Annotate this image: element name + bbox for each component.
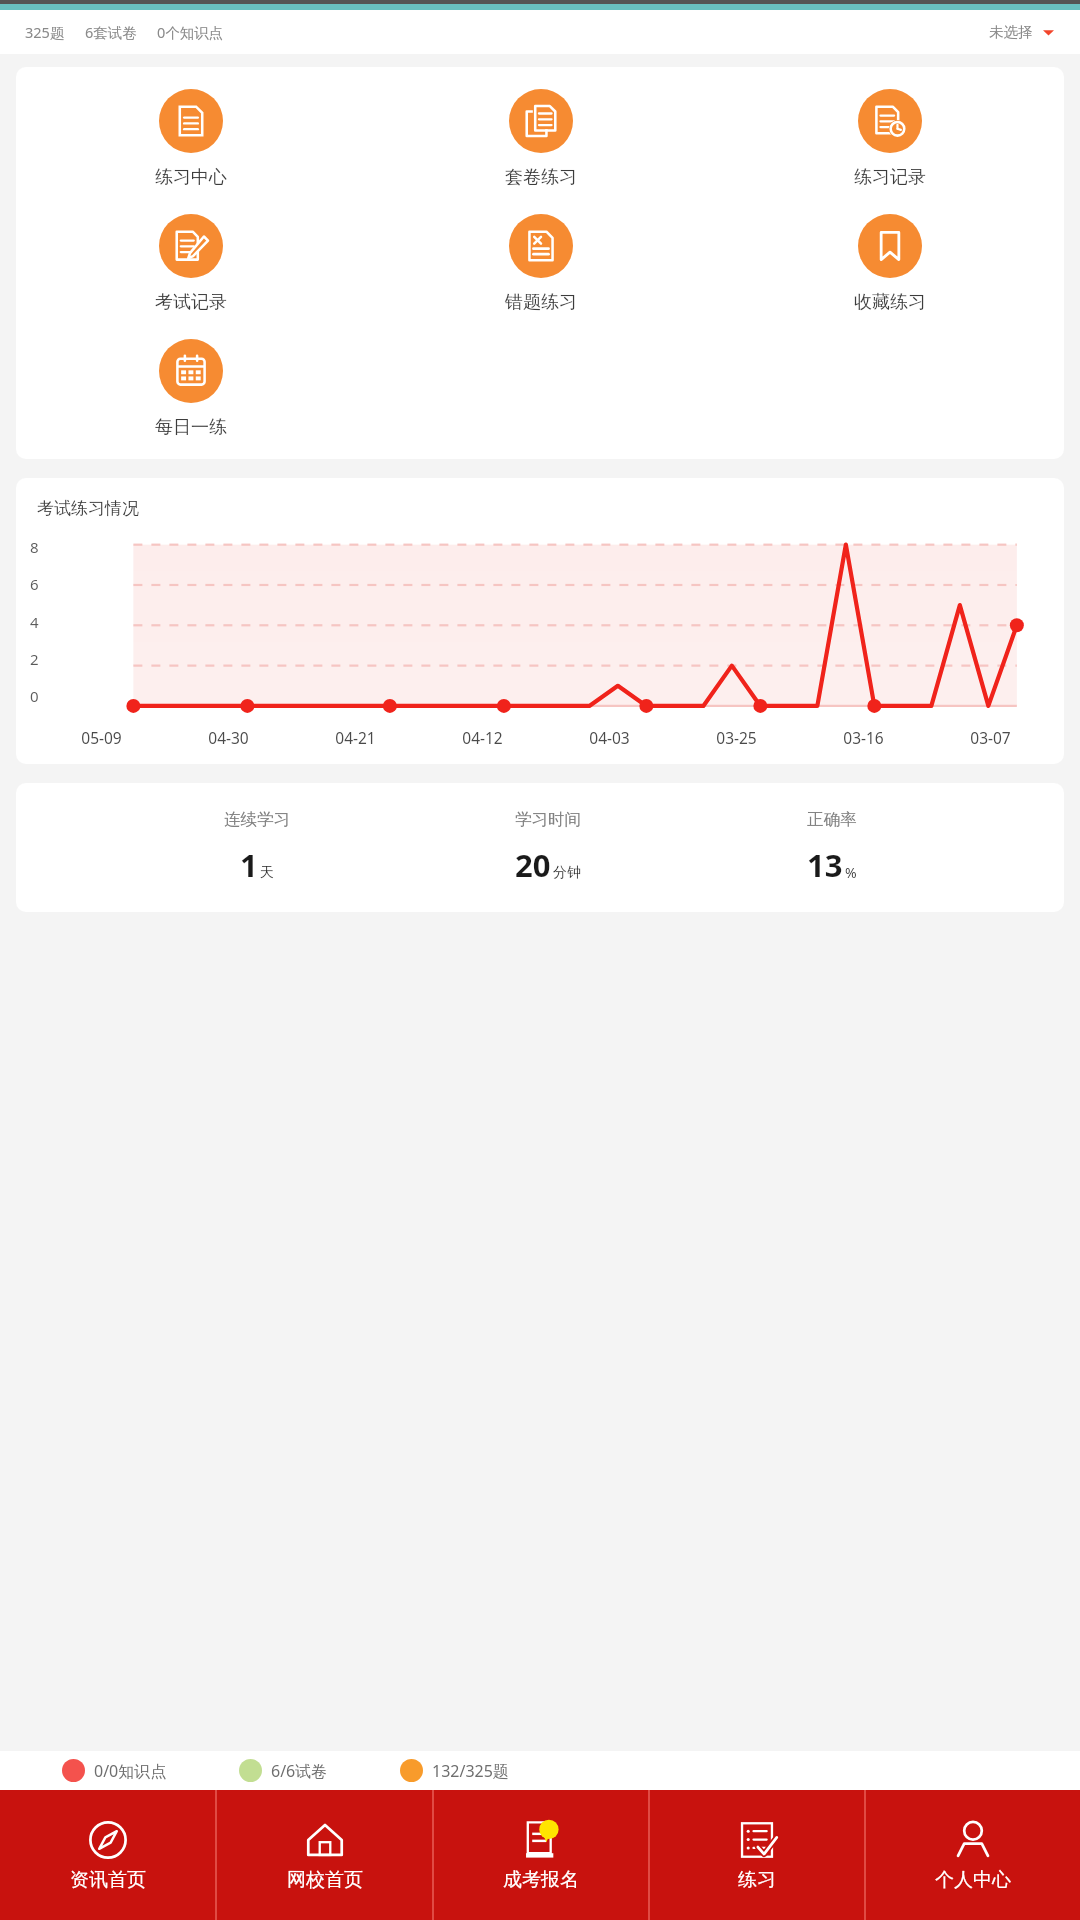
staticText: 练习中心	[155, 166, 227, 189]
staticText: 04-03	[589, 727, 630, 748]
staticText: 成考报名	[503, 1868, 579, 1892]
staticText: 20	[515, 844, 551, 886]
staticText: 04-21	[335, 727, 376, 748]
staticText: 分钟	[553, 864, 581, 882]
staticText: 1	[240, 844, 258, 886]
button[interactable]: 练习	[650, 1790, 864, 1920]
staticText: 04-30	[208, 727, 249, 748]
button[interactable]: 个人中心	[866, 1790, 1080, 1920]
button[interactable]: 练习记录	[854, 85, 926, 193]
button[interactable]: 网校首页	[217, 1790, 432, 1920]
button[interactable]: 学习时间	[497, 809, 599, 886]
button[interactable]: 正确率	[789, 809, 875, 886]
button[interactable]: 练习中心	[155, 85, 227, 193]
staticText: 0	[30, 686, 39, 706]
staticText: 资讯首页	[70, 1868, 146, 1892]
staticText: 天	[260, 864, 274, 882]
staticText: 错题练习	[505, 291, 577, 314]
staticText: 05-09	[81, 727, 122, 748]
staticText: 03-25	[716, 727, 757, 748]
button[interactable]: 成考报名	[434, 1790, 648, 1920]
staticText: 04-12	[462, 727, 503, 748]
staticText: 03-16	[843, 727, 884, 748]
staticText: 4	[30, 612, 39, 632]
staticText: 6套试卷	[85, 22, 137, 42]
staticText: 未选择	[989, 23, 1033, 41]
staticText: 0个知识点	[157, 22, 224, 42]
staticText: 连续学习	[224, 809, 290, 830]
staticText: 考试练习情况	[37, 498, 139, 519]
staticText: 2	[30, 649, 39, 669]
staticText: 每日一练	[155, 416, 227, 439]
button[interactable]: 资讯首页	[0, 1790, 215, 1920]
staticText: 学习时间	[515, 809, 581, 830]
staticText: 收藏练习	[854, 291, 926, 314]
staticText: 套卷练习	[505, 166, 577, 189]
staticText: 6/6试卷	[271, 1760, 328, 1782]
staticText: 8	[30, 537, 39, 557]
staticText: 练习记录	[854, 166, 926, 189]
staticText: 03-07	[970, 727, 1011, 748]
staticText: 考试记录	[155, 291, 227, 314]
staticText: 132/325题	[432, 1760, 509, 1782]
staticText: 0/0知识点	[94, 1760, 167, 1782]
staticText: 网校首页	[287, 1868, 363, 1892]
button[interactable]: 考试记录	[155, 210, 227, 318]
staticText: 正确率	[807, 809, 857, 830]
staticText: 325题	[25, 22, 65, 42]
button[interactable]: 套卷练习	[505, 85, 577, 193]
staticText: 个人中心	[935, 1868, 1011, 1892]
button[interactable]: 连续学习	[206, 809, 308, 886]
button[interactable]: 未选择	[985, 19, 1058, 45]
button[interactable]: 错题练习	[505, 210, 577, 318]
staticText: 13	[807, 844, 843, 886]
staticText: 6	[30, 574, 39, 594]
button[interactable]: 每日一练	[155, 335, 227, 443]
staticText: %	[845, 863, 857, 882]
button[interactable]: 收藏练习	[854, 210, 926, 318]
staticText: 练习	[738, 1868, 776, 1892]
